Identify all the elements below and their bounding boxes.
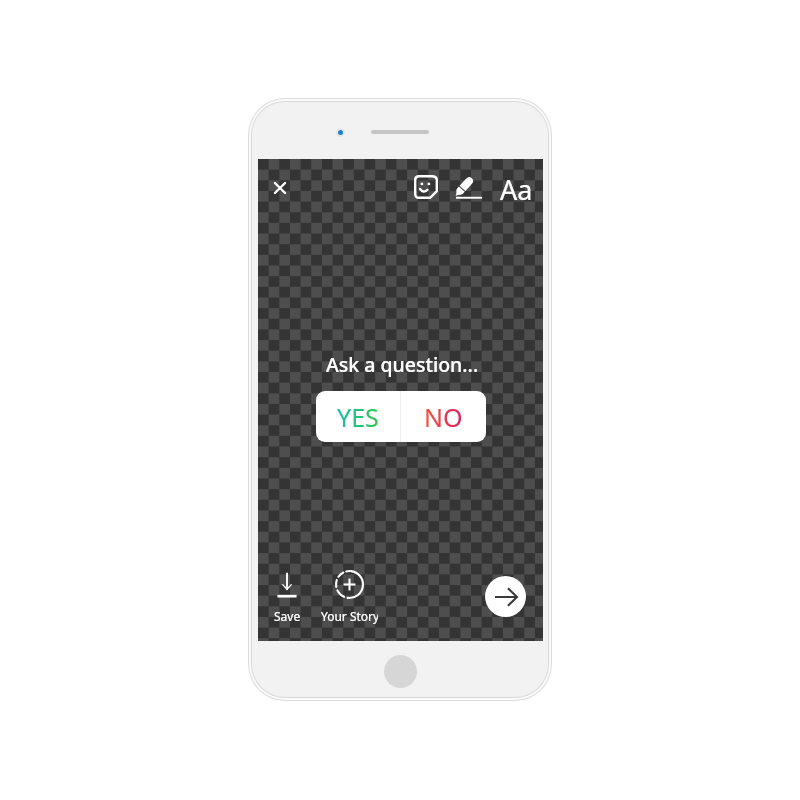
staticText: Your Story (321, 608, 378, 624)
button[interactable]: Home (384, 655, 417, 688)
button[interactable]: Text (500, 171, 533, 208)
button[interactable]: Save (265, 569, 309, 625)
staticText: YES (337, 400, 379, 434)
button[interactable]: Send (485, 576, 526, 617)
button[interactable]: Stickers (414, 175, 438, 199)
button[interactable]: NO (401, 391, 486, 442)
button[interactable]: Close (269, 177, 291, 199)
button[interactable]: Draw (453, 175, 483, 201)
staticText: Ask a question... (326, 351, 479, 378)
button[interactable]: YES (316, 391, 400, 442)
button[interactable]: Your Story (321, 567, 378, 625)
staticText: Save (274, 608, 301, 624)
staticText: Aa (500, 171, 533, 208)
staticText: NO (424, 400, 463, 434)
